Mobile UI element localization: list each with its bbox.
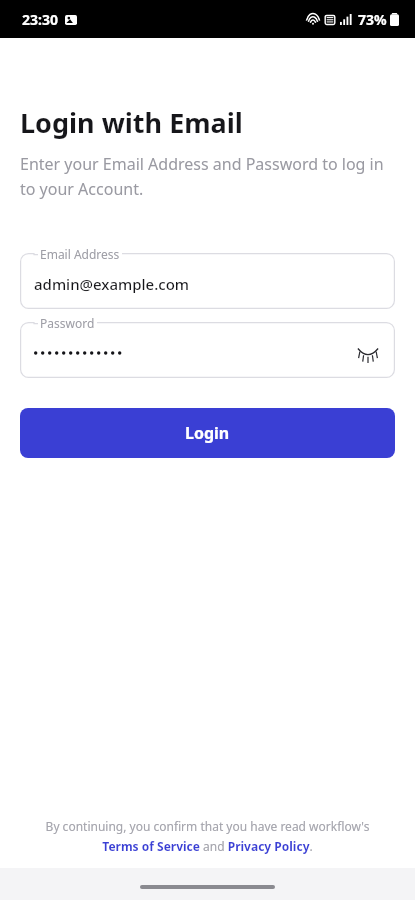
button[interactable]: Email Address — [20, 253, 395, 309]
staticText: 73% — [358, 10, 387, 29]
staticText: 23:30 — [22, 10, 58, 29]
staticText: Email Address — [40, 246, 120, 262]
staticText: Password — [40, 315, 95, 331]
button[interactable]: Login — [20, 408, 395, 458]
staticText: Login — [185, 422, 230, 444]
staticText: admin@example.com — [34, 274, 190, 294]
button[interactable]: Show password — [355, 340, 381, 366]
staticText: By continuing, you confirm that you have… — [26, 818, 389, 854]
button[interactable]: By continuing, you confirm that you have… — [26, 818, 389, 854]
staticText: Enter your Email Address and Password to… — [20, 153, 397, 199]
button[interactable]: Password — [20, 322, 395, 378]
staticText: Login with Email — [20, 104, 243, 141]
